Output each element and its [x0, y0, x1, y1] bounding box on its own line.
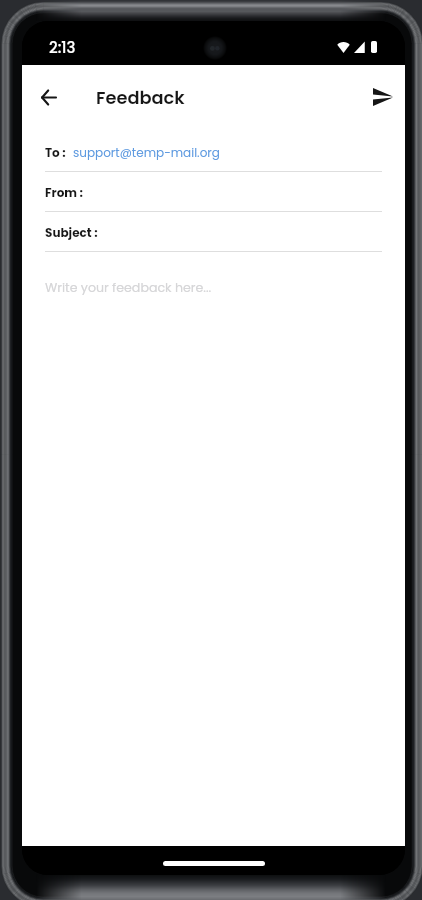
staticText: support@temp-mail.org — [73, 144, 220, 161]
staticText: From : — [45, 184, 84, 201]
staticText: Feedback — [96, 85, 185, 110]
staticText: 2:13 — [49, 37, 76, 58]
staticText: To : — [45, 144, 66, 161]
staticText: Write your feedback here... — [45, 279, 212, 297]
staticText: Subject : — [45, 224, 98, 241]
button[interactable]: Back — [28, 77, 68, 117]
button[interactable]: Send — [363, 77, 403, 117]
